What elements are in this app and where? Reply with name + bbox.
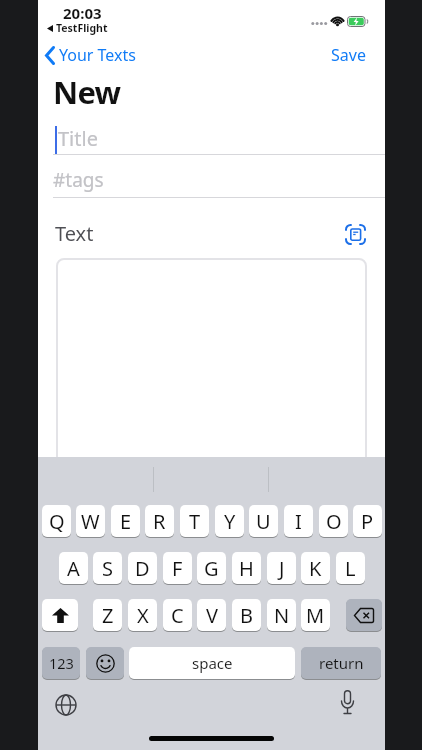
button[interactable] bbox=[346, 599, 382, 631]
button[interactable]: Q bbox=[42, 505, 71, 537]
staticText: Y bbox=[224, 508, 236, 535]
button[interactable]: F bbox=[163, 552, 192, 584]
button[interactable]: D bbox=[128, 552, 157, 584]
staticText: space bbox=[192, 653, 233, 673]
button[interactable]: V bbox=[197, 599, 226, 631]
button[interactable]: K bbox=[301, 552, 330, 584]
staticText: Text bbox=[55, 220, 94, 247]
staticText: C bbox=[171, 602, 184, 629]
button[interactable]: I bbox=[284, 505, 313, 537]
staticText: W bbox=[81, 508, 100, 535]
staticText: E bbox=[120, 508, 132, 535]
staticText: A bbox=[67, 555, 80, 582]
staticText: U bbox=[256, 508, 271, 535]
staticText: TestFlight bbox=[56, 21, 108, 35]
staticText: Title bbox=[58, 125, 98, 152]
staticText: Save bbox=[331, 44, 366, 66]
button[interactable]: W bbox=[76, 505, 105, 537]
button[interactable]: return bbox=[301, 647, 381, 679]
button[interactable] bbox=[56, 258, 367, 470]
button[interactable]: B bbox=[232, 599, 261, 631]
button[interactable]: space bbox=[129, 647, 295, 679]
staticText: I bbox=[295, 508, 302, 535]
button[interactable]: 123 bbox=[42, 647, 80, 679]
staticText: T bbox=[189, 508, 201, 535]
staticText: G bbox=[204, 555, 219, 582]
staticText: #tags bbox=[53, 167, 104, 193]
button[interactable]: O bbox=[319, 505, 348, 537]
button[interactable]: Save bbox=[321, 44, 366, 66]
button[interactable]: R bbox=[145, 505, 174, 537]
button[interactable] bbox=[345, 224, 366, 245]
staticText: O bbox=[326, 508, 342, 535]
button[interactable]: L bbox=[336, 552, 365, 584]
button[interactable]: Y bbox=[215, 505, 244, 537]
button[interactable]: H bbox=[232, 552, 261, 584]
staticText: F bbox=[172, 555, 183, 582]
staticText: D bbox=[135, 555, 150, 582]
staticText: L bbox=[345, 555, 356, 582]
staticText: B bbox=[240, 602, 253, 629]
button[interactable]: P bbox=[353, 505, 382, 537]
staticText: Q bbox=[49, 508, 65, 535]
staticText: 123 bbox=[49, 653, 74, 673]
staticText: return bbox=[319, 653, 364, 673]
button[interactable]: N bbox=[267, 599, 296, 631]
staticText: R bbox=[153, 508, 166, 535]
staticText: M bbox=[306, 602, 325, 629]
button[interactable] bbox=[55, 694, 77, 716]
staticText: New bbox=[53, 71, 121, 113]
staticText: S bbox=[102, 555, 113, 582]
button[interactable]: T bbox=[180, 505, 209, 537]
staticText: V bbox=[206, 602, 218, 629]
button[interactable]: A bbox=[59, 552, 88, 584]
button[interactable]: G bbox=[197, 552, 226, 584]
staticText: P bbox=[361, 508, 374, 535]
staticText: J bbox=[279, 555, 285, 582]
button[interactable]: U bbox=[249, 505, 278, 537]
staticText: X bbox=[137, 602, 149, 629]
staticText: N bbox=[274, 602, 290, 629]
button[interactable] bbox=[86, 647, 124, 679]
staticText: K bbox=[309, 555, 322, 582]
button[interactable] bbox=[340, 690, 355, 718]
button[interactable]: Z bbox=[93, 599, 122, 631]
button[interactable] bbox=[42, 599, 78, 631]
staticText: 20:03 bbox=[63, 3, 102, 23]
button[interactable]: X bbox=[128, 599, 157, 631]
button[interactable]: J bbox=[267, 552, 296, 584]
staticText: H bbox=[239, 555, 254, 582]
staticText: Your Texts bbox=[59, 44, 136, 66]
button[interactable]: S bbox=[93, 552, 122, 584]
button[interactable]: Your Texts bbox=[44, 44, 136, 66]
staticText: Z bbox=[102, 602, 114, 629]
button[interactable]: M bbox=[301, 599, 330, 631]
button[interactable]: C bbox=[163, 599, 192, 631]
button[interactable]: E bbox=[111, 505, 140, 537]
